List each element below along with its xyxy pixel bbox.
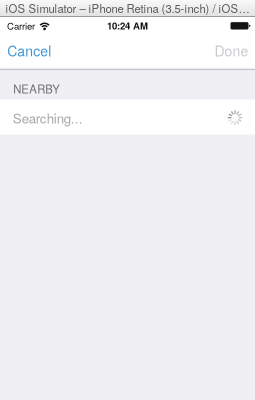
staticText: Done [214,40,248,60]
staticText: Cancel [7,40,51,60]
staticText: NEARBY [13,80,60,97]
button[interactable]: Done [205,33,255,68]
staticText: Carrier [7,19,35,32]
staticText: 10:24 AM [107,19,148,32]
button[interactable]: Searching... [0,99,255,134]
staticText: iOS Simulator – iPhone Retina (3.5-inch)… [5,0,249,16]
staticText: Searching... [13,108,83,127]
button[interactable]: Cancel [0,33,60,68]
